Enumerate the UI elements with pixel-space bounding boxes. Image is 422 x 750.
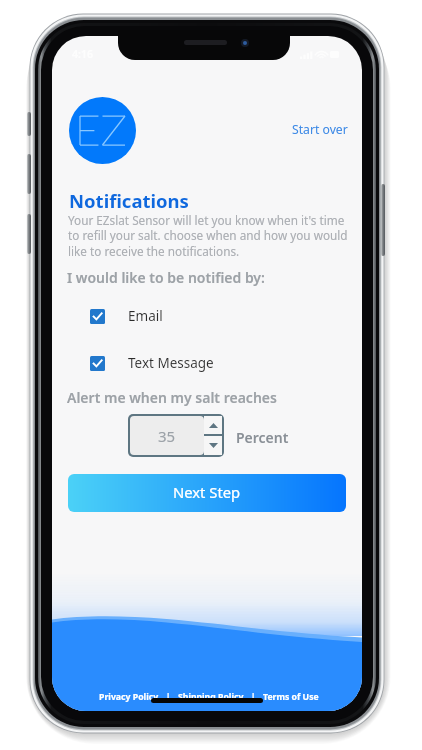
staticText: Next Step bbox=[173, 482, 241, 502]
button[interactable]: Shipping Policy bbox=[178, 691, 244, 703]
button[interactable]: Text Message bbox=[90, 354, 214, 372]
button[interactable]: Decrease bbox=[204, 436, 222, 455]
button[interactable]: Email bbox=[90, 307, 163, 325]
staticText: Terms of Use bbox=[263, 691, 319, 703]
button[interactable]: Increase bbox=[204, 416, 222, 434]
staticText: | bbox=[159, 691, 178, 703]
staticText: Shipping Policy bbox=[178, 691, 244, 703]
staticText: Text Message bbox=[128, 354, 214, 372]
button[interactable]: Next Step bbox=[68, 474, 346, 512]
staticText: Percent bbox=[236, 428, 289, 447]
staticText: Privacy Policy bbox=[99, 691, 159, 703]
staticText: | bbox=[244, 691, 263, 703]
staticText: I would like to be notified by: bbox=[67, 268, 265, 287]
staticText: Your EZslat Sensor will let you know whe… bbox=[68, 212, 348, 260]
button[interactable]: Privacy Policy bbox=[99, 691, 159, 703]
staticText: Notifications bbox=[69, 188, 189, 213]
staticText: Start over bbox=[292, 121, 348, 138]
staticText: 35 bbox=[158, 426, 176, 446]
staticText: Email bbox=[128, 307, 163, 325]
staticText: Alert me when my salt reaches bbox=[67, 388, 277, 407]
button[interactable]: Start over bbox=[288, 117, 352, 142]
button[interactable]: Terms of Use bbox=[263, 691, 319, 703]
